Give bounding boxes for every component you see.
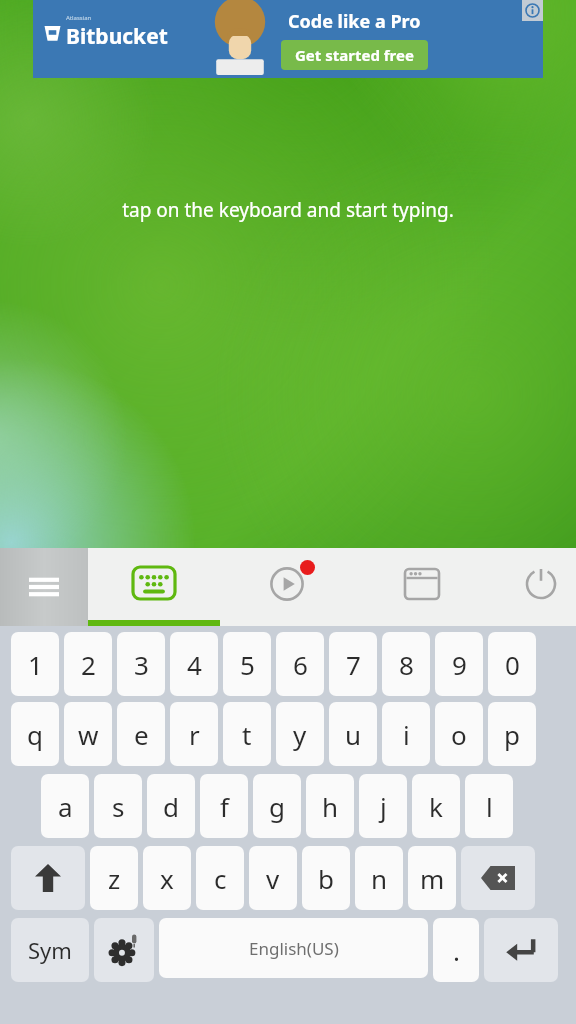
staticText: 9 (452, 647, 467, 682)
button[interactable]: Sym (11, 918, 89, 982)
staticText: x (160, 861, 174, 896)
staticText: v (266, 861, 280, 896)
button[interactable]: 9 (435, 632, 483, 696)
staticText: u (345, 717, 362, 752)
staticText: k (429, 789, 443, 824)
button[interactable]: Keyboard (88, 548, 220, 626)
button[interactable]: t (223, 702, 271, 766)
button[interactable]: Enter (484, 918, 558, 982)
button[interactable]: m (408, 846, 456, 910)
button[interactable]: k (412, 774, 460, 838)
button[interactable]: e (117, 702, 165, 766)
staticText: . (453, 933, 460, 968)
button[interactable]: r (170, 702, 218, 766)
button[interactable]: j (359, 774, 407, 838)
staticText: j (380, 789, 387, 824)
button[interactable]: v (249, 846, 297, 910)
button[interactable]: Menu (0, 548, 88, 626)
button[interactable]: b (302, 846, 350, 910)
button[interactable]: Power (506, 548, 576, 626)
staticText: q (27, 717, 43, 752)
staticText: w (78, 717, 99, 752)
button[interactable]: Record (253, 548, 321, 626)
staticText: a (58, 789, 73, 824)
button[interactable]: d (147, 774, 195, 838)
staticText: o (451, 717, 467, 752)
staticText: Atlassian (66, 14, 92, 22)
button[interactable]: 2 (64, 632, 112, 696)
staticText: i (403, 717, 410, 752)
staticText: Get started free (295, 45, 414, 65)
staticText: tap on the keyboard and start typing. (122, 197, 454, 223)
staticText: 0 (505, 647, 520, 682)
staticText: l (486, 789, 493, 824)
staticText: 2 (81, 647, 96, 682)
button[interactable]: g (253, 774, 301, 838)
staticText: b (318, 861, 334, 896)
button[interactable]: Get started free (281, 40, 428, 70)
staticText: English(US) (249, 937, 339, 960)
staticText: f (220, 789, 229, 824)
staticText: h (322, 789, 339, 824)
staticText: 4 (187, 647, 202, 682)
button[interactable]: n (355, 846, 403, 910)
button[interactable]: u (329, 702, 377, 766)
staticText: 3 (134, 647, 149, 682)
button[interactable]: x (143, 846, 191, 910)
button[interactable]: i (382, 702, 430, 766)
staticText: 6 (293, 647, 308, 682)
staticText: r (189, 717, 200, 752)
staticText: Sym (28, 935, 72, 965)
button[interactable]: 8 (382, 632, 430, 696)
button[interactable]: Atlassian (33, 0, 543, 78)
button[interactable]: 1 (11, 632, 59, 696)
button[interactable]: f (200, 774, 248, 838)
staticText: 5 (240, 647, 255, 682)
staticText: 8 (399, 647, 414, 682)
staticText: e (134, 717, 149, 752)
button[interactable]: 0 (488, 632, 536, 696)
staticText: g (269, 789, 285, 824)
button[interactable]: s (94, 774, 142, 838)
staticText: Code like a Pro (288, 9, 421, 34)
staticText: d (163, 789, 179, 824)
button[interactable]: 5 (223, 632, 271, 696)
staticText: Bitbucket (66, 22, 168, 51)
button[interactable]: h (306, 774, 354, 838)
staticText: m (420, 861, 445, 896)
staticText: t (242, 717, 252, 752)
staticText: s (112, 789, 125, 824)
button[interactable]: Backspace (461, 846, 535, 910)
button[interactable]: z (90, 846, 138, 910)
button[interactable]: w (64, 702, 112, 766)
button[interactable]: English(US) (159, 918, 428, 978)
staticText: 7 (346, 647, 361, 682)
staticText: n (371, 861, 388, 896)
staticText: c (214, 861, 227, 896)
button[interactable]: 4 (170, 632, 218, 696)
button[interactable]: Shift (11, 846, 85, 910)
button[interactable]: Ad info (522, 0, 543, 21)
button[interactable]: 7 (329, 632, 377, 696)
staticText: y (293, 717, 307, 752)
button[interactable]: p (488, 702, 536, 766)
button[interactable]: Windows (388, 548, 456, 626)
staticText: p (504, 717, 520, 752)
staticText: 1 (28, 647, 43, 682)
staticText: z (108, 861, 121, 896)
button[interactable]: c (196, 846, 244, 910)
button[interactable]: 3 (117, 632, 165, 696)
button[interactable]: y (276, 702, 324, 766)
button[interactable]: l (465, 774, 513, 838)
button[interactable]: a (41, 774, 89, 838)
button[interactable]: o (435, 702, 483, 766)
button[interactable]: 6 (276, 632, 324, 696)
button[interactable]: Settings (94, 918, 154, 982)
button[interactable]: q (11, 702, 59, 766)
button[interactable]: . (433, 918, 479, 982)
